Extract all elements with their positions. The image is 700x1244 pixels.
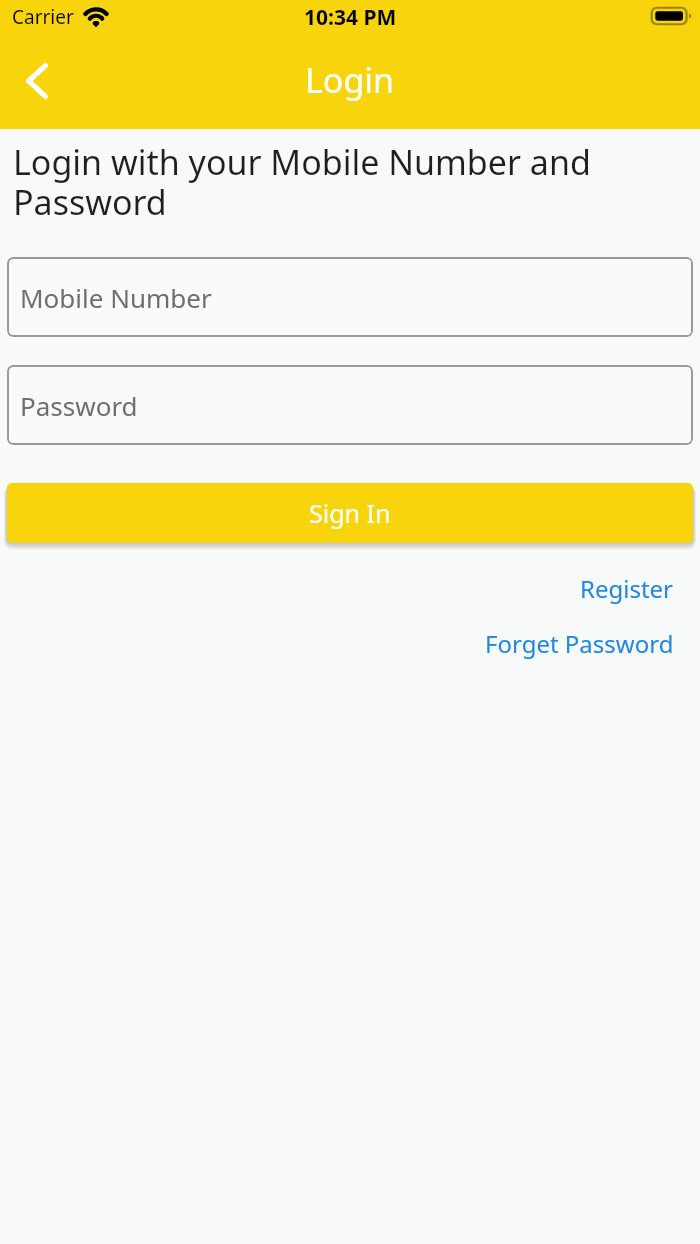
button[interactable]: Back bbox=[14, 54, 60, 108]
staticText: Mobile Number bbox=[20, 280, 212, 315]
button[interactable]: Register bbox=[568, 568, 700, 609]
staticText: Carrier bbox=[12, 4, 74, 30]
staticText: Login with your Mobile Number and Passwo… bbox=[13, 144, 620, 224]
staticText: Login bbox=[305, 57, 395, 103]
button[interactable]: Password bbox=[7, 365, 693, 445]
button[interactable]: Forget Password bbox=[473, 623, 700, 664]
staticText: 10:34 PM bbox=[304, 3, 397, 32]
staticText: Forget Password bbox=[485, 627, 674, 660]
staticText: Password bbox=[20, 388, 138, 423]
staticText: Register bbox=[580, 572, 674, 605]
button[interactable]: Mobile Number bbox=[7, 257, 693, 337]
staticText: Sign In bbox=[309, 496, 391, 530]
button[interactable]: Sign In bbox=[7, 483, 693, 543]
